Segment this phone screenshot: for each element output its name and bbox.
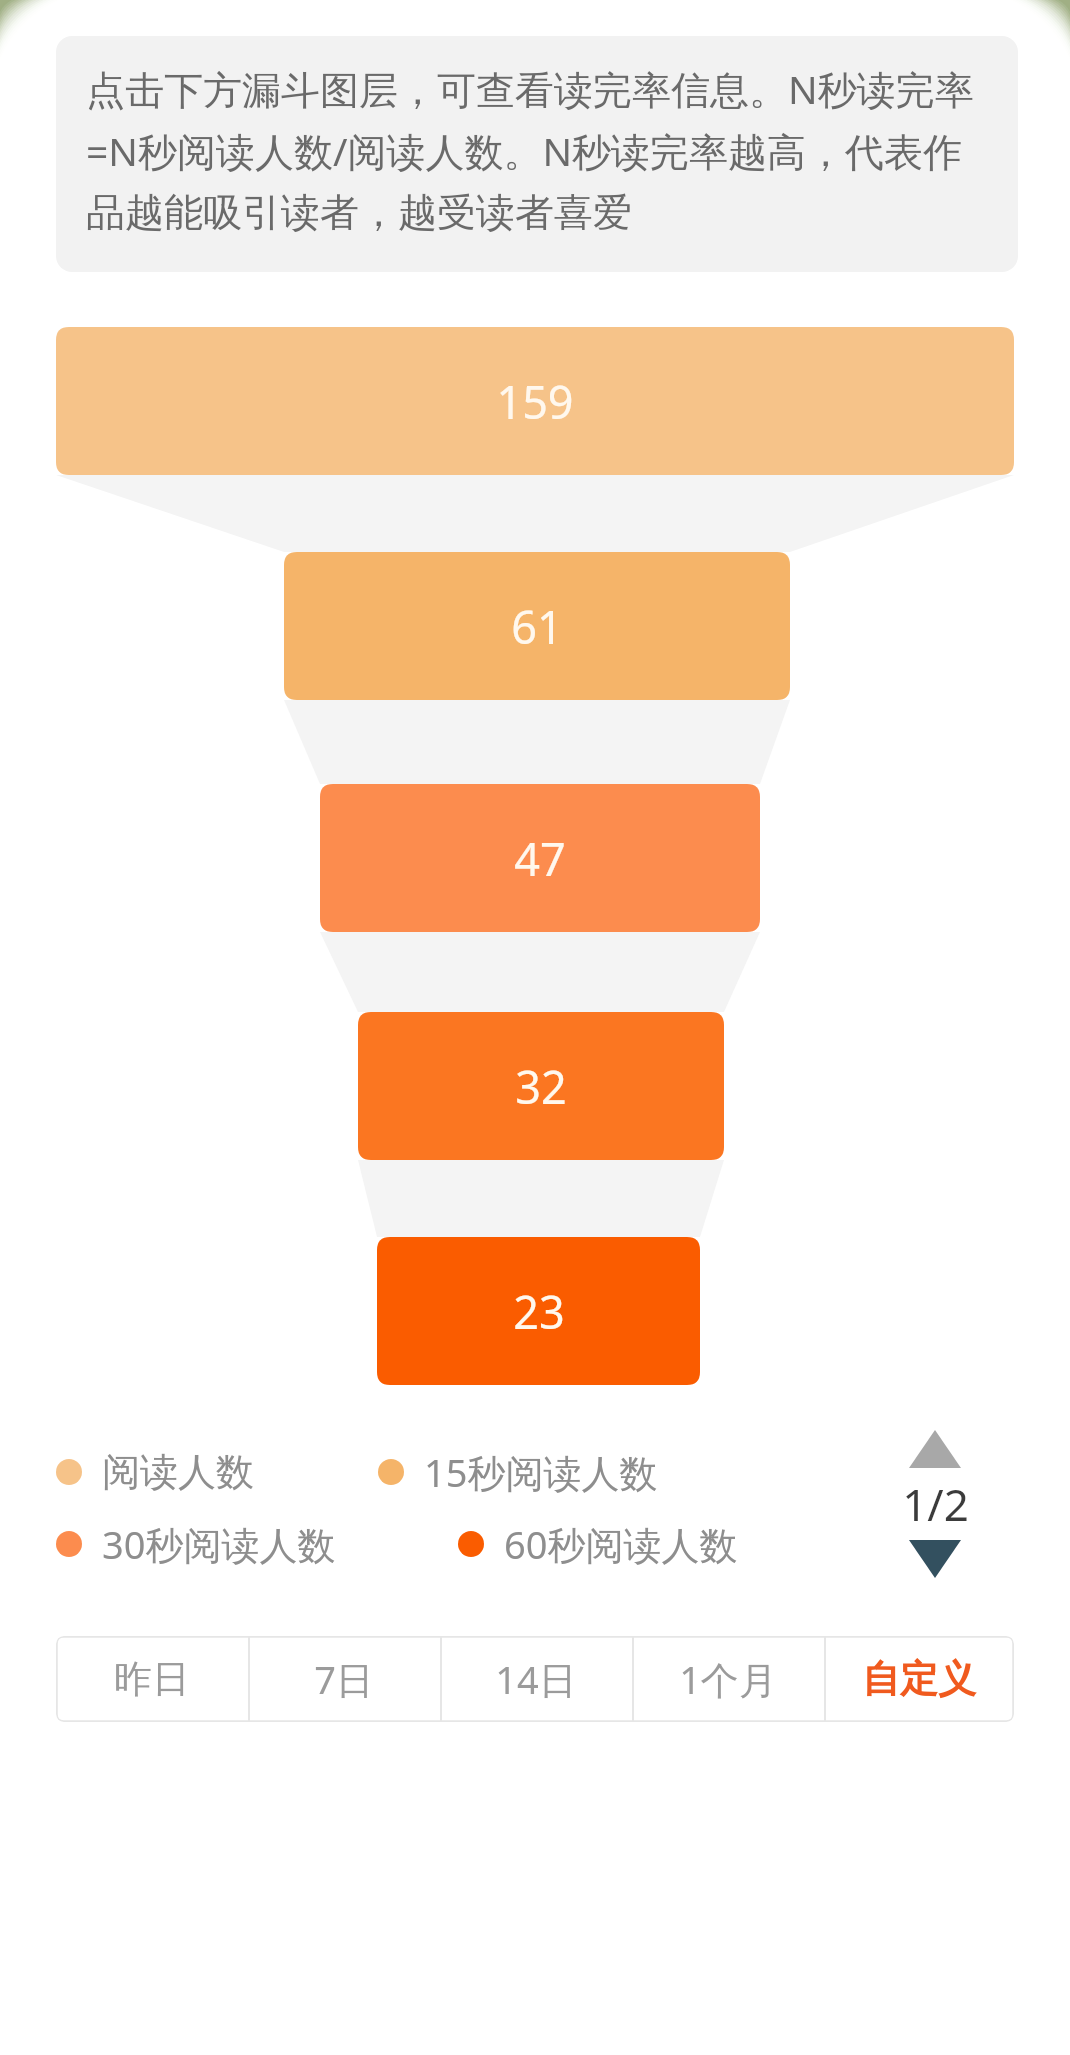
staticText: 30秒阅读人数	[102, 1518, 336, 1570]
staticText: 阅读人数	[102, 1448, 254, 1496]
staticText: 1个月	[679, 1653, 777, 1705]
button[interactable]: Previous page	[902, 1424, 968, 1474]
button[interactable]: 14日	[440, 1636, 632, 1722]
button[interactable]: Next page	[902, 1534, 968, 1584]
staticText: 点击下方漏斗图层，可查看读完率信息。N秒读完率=N秒阅读人数/阅读人数。N秒读完…	[86, 62, 992, 237]
button[interactable]: 61	[284, 552, 790, 700]
staticText: 23	[513, 1281, 565, 1342]
button[interactable]: 1个月	[632, 1636, 824, 1722]
button[interactable]: 60秒阅读人数	[458, 1516, 738, 1572]
button[interactable]: 32	[358, 1012, 724, 1160]
staticText: 14日	[495, 1653, 577, 1705]
button[interactable]: 159	[56, 327, 1014, 475]
button[interactable]: 点击下方漏斗图层，可查看读完率信息。N秒读完率=N秒阅读人数/阅读人数。N秒读完…	[56, 36, 1018, 272]
staticText: 32	[515, 1056, 567, 1117]
staticText: 7日	[314, 1653, 374, 1705]
button[interactable]: 昨日	[56, 1636, 248, 1722]
button[interactable]: 阅读人数	[56, 1444, 254, 1500]
staticText: 1/2	[902, 1474, 969, 1534]
staticText: 47	[514, 828, 566, 889]
staticText: 15秒阅读人数	[424, 1446, 658, 1498]
staticText: 60秒阅读人数	[504, 1518, 738, 1570]
staticText: 61	[511, 596, 563, 657]
button[interactable]: 15秒阅读人数	[378, 1444, 658, 1500]
button[interactable]: 7日	[248, 1636, 440, 1722]
staticText: 159	[496, 371, 574, 432]
staticText: 昨日	[114, 1655, 190, 1703]
staticText: 自定义	[862, 1655, 976, 1703]
button[interactable]: 23	[377, 1237, 700, 1385]
button[interactable]: 47	[320, 784, 760, 932]
button[interactable]: 自定义	[824, 1636, 1014, 1722]
button[interactable]: 30秒阅读人数	[56, 1516, 336, 1572]
